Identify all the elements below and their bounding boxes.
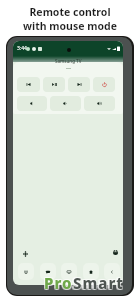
button[interactable]: Home — [83, 263, 99, 280]
button[interactable]: Previous — [17, 77, 40, 92]
button[interactable]: Keyboard — [18, 263, 34, 280]
staticText: ProSmart — [45, 274, 125, 294]
button[interactable]: Apps — [61, 263, 77, 280]
staticText: Smart — [73, 273, 124, 293]
button[interactable]: Mute — [17, 96, 47, 111]
staticText: ProSmart — [43, 274, 123, 294]
button[interactable]: Power — [93, 77, 115, 92]
staticText: with mouse mode — [23, 19, 117, 33]
other: D-pad mode — [23, 251, 28, 257]
button[interactable]: Back — [104, 263, 120, 280]
button[interactable]: Volume down — [50, 96, 81, 111]
button[interactable]: Play pause — [43, 77, 65, 92]
staticText: Remote control — [29, 5, 111, 19]
staticText: ProSmart — [43, 272, 123, 292]
button[interactable]: Volume up — [84, 96, 115, 111]
button[interactable]: Messages — [40, 263, 56, 280]
other: Mouse mode — [113, 250, 118, 255]
button[interactable]: Next — [68, 77, 90, 92]
staticText: ProSmart — [45, 273, 125, 293]
staticText: Samsung TV — [55, 58, 82, 64]
staticText: ProSmart — [44, 272, 124, 292]
staticText: ProSmart — [45, 272, 125, 292]
staticText: Pro — [44, 273, 73, 293]
staticText: ProSmart — [44, 274, 124, 294]
staticText: 3:44 — [17, 45, 27, 52]
staticText: ProSmart — [43, 273, 123, 293]
